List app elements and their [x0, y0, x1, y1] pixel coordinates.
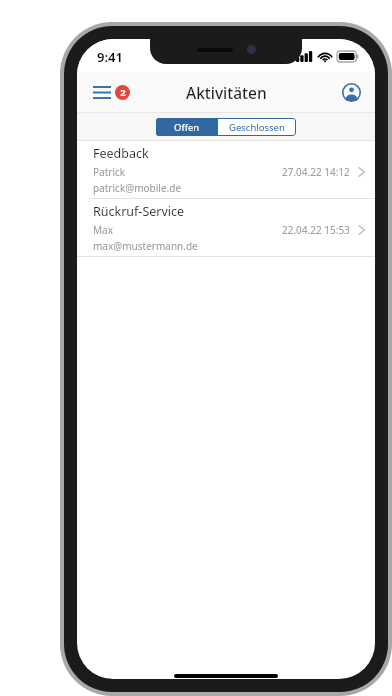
staticText: patrick@mobile.de: [93, 181, 182, 195]
button[interactable]: Feedback: [77, 141, 375, 198]
staticText: Aktivitäten: [186, 82, 267, 103]
staticText: Max: [93, 223, 113, 237]
staticText: Offen: [174, 121, 200, 134]
button[interactable]: Offen: [156, 118, 218, 136]
staticText: Patrick: [93, 165, 126, 179]
staticText: Geschlossen: [229, 121, 285, 134]
staticText: Rückruf-Service: [93, 203, 185, 220]
button[interactable]: Profile: [338, 79, 365, 106]
button[interactable]: Rückruf-Service: [77, 199, 375, 256]
button[interactable]: Geschlossen: [218, 118, 296, 136]
staticText: 2: [120, 86, 126, 99]
staticText: Feedback: [93, 145, 149, 162]
staticText: max@mustermann.de: [93, 239, 198, 253]
staticText: 22.04.22 15:53: [282, 223, 350, 237]
staticText: 9:41: [97, 48, 123, 66]
staticText: 27.04.22 14:12: [282, 165, 350, 179]
button[interactable]: Menu, 2 notifications: [85, 79, 138, 106]
